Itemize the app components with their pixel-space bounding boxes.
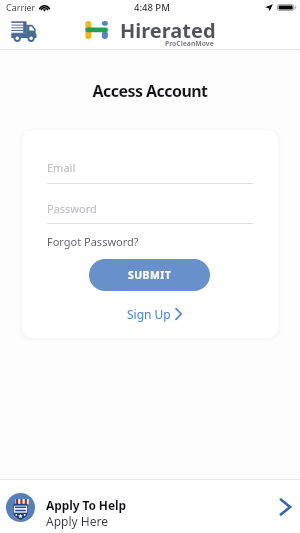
staticText: Apply Here <box>46 513 108 529</box>
button[interactable]: Apply To Help <box>0 479 300 533</box>
button[interactable]: SUBMIT <box>89 259 210 291</box>
staticText: Forgot Password? <box>47 234 139 249</box>
button[interactable]: Forgot Password? <box>47 234 139 249</box>
staticText: Apply To Help <box>46 497 126 513</box>
button[interactable]: Password <box>47 201 253 229</box>
staticText: ProCleanMove <box>165 39 214 48</box>
staticText: Email <box>47 160 76 175</box>
staticText: Password <box>47 201 97 216</box>
staticText: SUBMIT <box>128 268 172 282</box>
button[interactable]: Moving truck <box>5 19 39 45</box>
staticText: Access Account <box>0 80 300 102</box>
staticText: Hirerated <box>120 17 216 44</box>
staticText: 4:48 PM <box>134 1 170 14</box>
button[interactable]: Open <box>274 496 296 518</box>
staticText: Sign Up <box>127 306 171 322</box>
staticText: Carrier <box>6 1 36 13</box>
button[interactable]: Email <box>47 160 253 188</box>
button[interactable]: Sign Up <box>127 306 183 322</box>
